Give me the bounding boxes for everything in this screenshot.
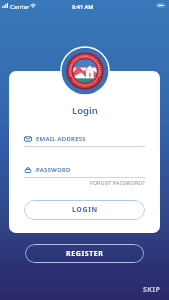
staticText: 9:41 AM: [72, 3, 94, 11]
staticText: LOGIN: [72, 205, 98, 215]
staticText: SKIP: [143, 285, 161, 295]
staticText: REGISTER: [66, 249, 104, 259]
staticText: Carrier: [10, 3, 30, 11]
button[interactable]: SKIP: [142, 284, 162, 296]
staticText: EMAIL ADDRESS: [36, 135, 86, 143]
staticText: Login: [72, 104, 98, 117]
staticText: PASSWORD: [36, 166, 71, 174]
button[interactable]: LOGIN: [24, 200, 145, 220]
button[interactable]: REGISTER: [25, 244, 144, 263]
button[interactable]: FORGOT PASSWORD?: [90, 179, 145, 186]
